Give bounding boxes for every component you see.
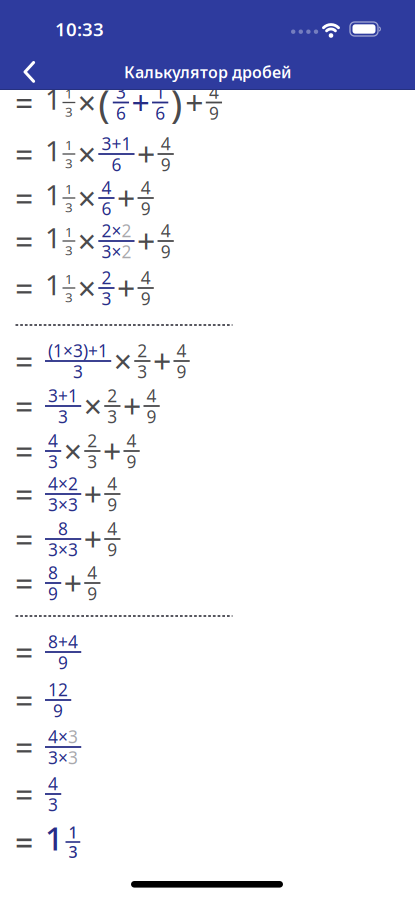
- staticText: 4: [48, 772, 58, 795]
- staticText: 9: [147, 405, 157, 428]
- staticText: ×: [78, 177, 96, 219]
- staticText: 8: [48, 561, 58, 584]
- staticText: 6: [116, 101, 126, 124]
- staticText: 2: [107, 384, 117, 407]
- staticText: 1: [65, 270, 73, 288]
- staticText: 3: [101, 287, 111, 310]
- staticText: 1: [68, 822, 77, 843]
- staticText: +: [131, 81, 149, 124]
- staticText: 9: [53, 699, 63, 722]
- staticText: 10:33: [55, 16, 104, 41]
- staticText: ×: [114, 340, 132, 382]
- staticText: 4: [87, 561, 97, 584]
- staticText: 9: [161, 240, 171, 263]
- staticText: 2×: [101, 219, 121, 242]
- staticText: 6: [155, 101, 165, 124]
- staticText: 8+4: [48, 630, 78, 653]
- staticText: 3: [65, 103, 73, 120]
- staticText: =: [15, 631, 33, 673]
- staticText: ×: [64, 430, 82, 472]
- staticText: 6: [111, 153, 121, 176]
- staticText: 3×: [101, 240, 121, 263]
- staticText: 3+1: [48, 384, 78, 407]
- staticText: +: [137, 220, 155, 262]
- staticText: 9: [58, 651, 68, 674]
- staticText: 3: [68, 725, 78, 748]
- staticText: =: [15, 430, 33, 472]
- staticText: 4: [107, 517, 117, 540]
- staticText: 1: [65, 180, 73, 198]
- staticText: 2: [87, 429, 97, 452]
- staticText: 1: [45, 80, 61, 118]
- staticText: ×: [78, 81, 96, 124]
- staticText: 6: [101, 197, 111, 220]
- staticText: 3: [116, 81, 126, 104]
- staticText: 3×: [48, 746, 68, 769]
- staticText: 4×2: [48, 472, 78, 495]
- staticText: +: [84, 518, 102, 560]
- staticText: (1×3)+1: [48, 339, 108, 362]
- staticText: 4: [48, 429, 58, 452]
- staticText: 3: [68, 841, 77, 862]
- staticText: 1: [45, 266, 61, 303]
- staticText: +: [64, 562, 82, 604]
- staticText: =: [15, 473, 33, 515]
- button[interactable]: Back: [13, 53, 46, 91]
- staticText: =: [15, 679, 33, 721]
- staticText: +: [123, 385, 141, 427]
- staticText: 4: [127, 429, 137, 452]
- staticText: 9: [107, 538, 117, 561]
- staticText: +: [84, 473, 102, 515]
- staticText: 3: [87, 450, 97, 473]
- staticText: +: [117, 177, 135, 219]
- staticText: =: [15, 340, 33, 382]
- staticText: ×: [84, 385, 102, 427]
- staticText: 9: [107, 493, 117, 516]
- staticText: 8: [58, 517, 68, 540]
- staticText: 3: [65, 288, 73, 306]
- staticText: 9: [209, 101, 219, 124]
- staticText: +: [185, 81, 203, 124]
- staticText: =: [15, 177, 33, 219]
- staticText: 2: [137, 339, 147, 362]
- staticText: Калькулятор дробей: [124, 61, 291, 83]
- staticText: 3×3: [48, 538, 78, 561]
- staticText: 1: [65, 136, 73, 154]
- staticText: 12: [48, 678, 68, 701]
- staticText: +: [117, 267, 135, 309]
- staticText: 4: [209, 81, 219, 104]
- staticText: 4: [161, 132, 171, 155]
- staticText: 1: [45, 219, 61, 256]
- staticText: 1: [45, 817, 63, 859]
- staticText: 9: [127, 450, 137, 473]
- staticText: =: [15, 385, 33, 427]
- staticText: =: [15, 267, 33, 309]
- staticText: =: [15, 821, 33, 863]
- staticText: 4: [147, 384, 157, 407]
- staticText: 3×3: [48, 493, 78, 516]
- staticText: 3: [65, 198, 73, 216]
- staticText: 3: [137, 360, 147, 383]
- staticText: +: [103, 430, 121, 472]
- staticText: 9: [48, 582, 58, 605]
- staticText: =: [15, 773, 33, 815]
- staticText: 2: [121, 240, 131, 263]
- staticText: 1: [45, 132, 61, 169]
- staticText: 9: [141, 287, 151, 310]
- staticText: =: [15, 81, 33, 124]
- staticText: (: [98, 77, 110, 128]
- staticText: ×: [78, 220, 96, 262]
- staticText: 1: [45, 176, 61, 213]
- staticText: 4: [141, 266, 151, 289]
- staticText: 4: [177, 339, 187, 362]
- staticText: 4×: [48, 725, 68, 748]
- staticText: 3: [65, 154, 73, 172]
- staticText: 3: [68, 746, 78, 769]
- staticText: 9: [161, 153, 171, 176]
- staticText: 2: [101, 266, 111, 289]
- staticText: 4: [161, 219, 171, 242]
- staticText: =: [15, 562, 33, 604]
- staticText: 4: [141, 176, 151, 199]
- staticText: 3: [48, 793, 58, 816]
- staticText: 4: [107, 472, 117, 495]
